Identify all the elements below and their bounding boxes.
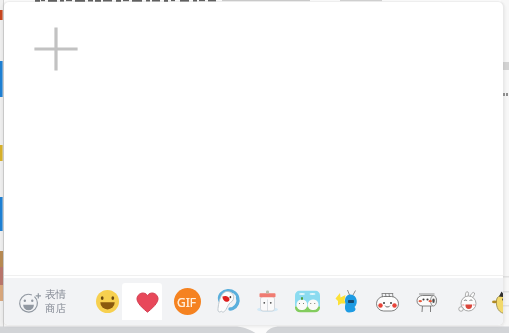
button[interactable]: Sticker pack 10 [487, 278, 503, 325]
button[interactable]: Favourites [127, 278, 167, 325]
button[interactable]: Sticker pack 4 [247, 278, 287, 325]
button[interactable]: Emoji [87, 278, 127, 325]
button[interactable]: Sticker pack 7 [367, 278, 407, 325]
staticText: GIF [177, 294, 197, 310]
button[interactable]: Sticker pack 5 [287, 278, 327, 325]
button[interactable]: Sticker pack 6 [327, 278, 367, 325]
button[interactable]: Add sticker [35, 28, 77, 70]
button[interactable]: 表情 商店 [10, 278, 82, 325]
button[interactable]: Sticker pack 8 [407, 278, 447, 325]
staticText: 表情 商店 [45, 288, 66, 315]
button[interactable]: GIF [167, 278, 207, 325]
button[interactable]: Sticker pack 9 [447, 278, 487, 325]
button[interactable]: Sticker pack 3 [207, 278, 247, 325]
